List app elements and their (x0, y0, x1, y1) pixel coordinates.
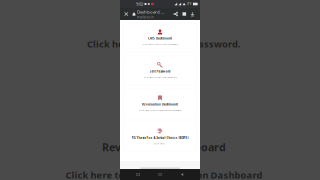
staticText: Dashboard [RM… (137, 9, 164, 15)
button[interactable]: CMS Dashboard (123, 23, 197, 52)
button[interactable]: Share (172, 11, 179, 17)
staticText: Click here to go to Revaluation Dashboar… (65, 169, 262, 180)
button[interactable]: Recent apps (134, 171, 142, 178)
button[interactable]: Close (123, 11, 130, 17)
staticText: Click here to edit your password. (87, 38, 241, 50)
button[interactable]: Edit Password (123, 56, 197, 85)
staticText: LTE (187, 2, 192, 6)
staticText: Revaluation Dashboard (142, 102, 178, 106)
staticText: 9:02 (136, 1, 143, 7)
button[interactable]: Back (178, 171, 186, 178)
button[interactable]: Download (190, 11, 195, 17)
staticText: Click here to go to CMS Dashboard (142, 42, 177, 46)
button[interactable]: Revaluation Dashboard (123, 89, 197, 118)
button[interactable]: Home (156, 171, 164, 178)
staticText: Click here… (154, 142, 166, 145)
staticText: Revaluation Dashboard (102, 140, 226, 154)
button[interactable]: Text size (181, 11, 187, 17)
staticText: Edit Password (149, 69, 170, 73)
button[interactable]: PG Thesis Fee & Initial Choice (BOPS) (123, 122, 197, 151)
staticText: results.ac.in (137, 15, 154, 19)
staticText: CMS Dashboard (148, 36, 172, 40)
staticText: Click here to go to Revaluation Dashboar… (139, 108, 181, 112)
staticText: PG Thesis Fee & Initial Choice (BOPS) (131, 136, 188, 140)
staticText: Click here to edit your password (143, 75, 176, 79)
